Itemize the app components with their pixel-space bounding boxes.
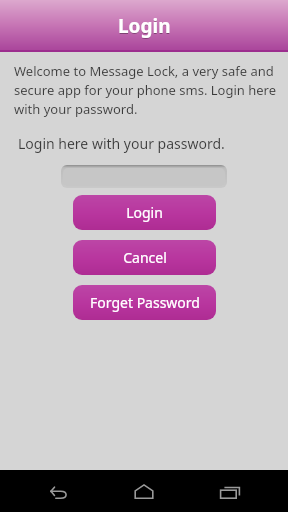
button[interactable]: Home	[116, 470, 172, 512]
staticText: Login here with your password.	[18, 134, 278, 153]
button[interactable]: Cancel	[73, 240, 216, 275]
staticText: Login	[126, 203, 163, 222]
button[interactable]: Back	[30, 470, 86, 512]
button[interactable]	[61, 165, 227, 188]
staticText: Welcome to Message Lock, a very safe and…	[14, 62, 278, 118]
button[interactable]: Login	[73, 195, 216, 230]
staticText: Forget Password	[90, 293, 200, 312]
button[interactable]: Recent apps	[202, 470, 258, 512]
staticText: Cancel	[123, 248, 167, 267]
button[interactable]: Forget Password	[73, 285, 216, 320]
staticText: Login	[118, 14, 171, 40]
staticText: Login	[118, 13, 171, 39]
